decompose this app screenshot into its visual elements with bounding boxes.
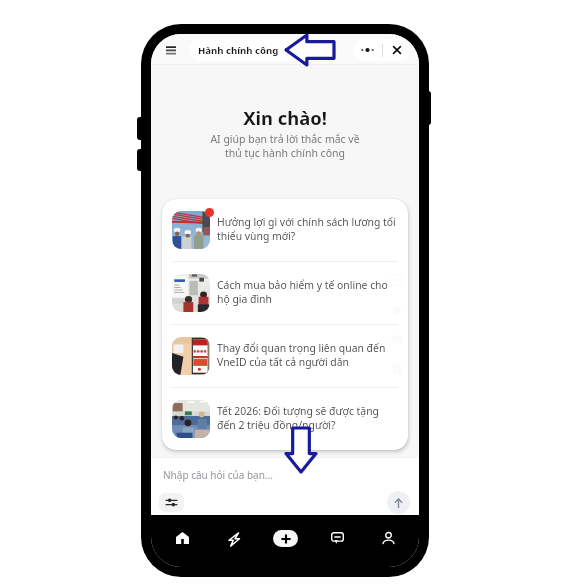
button[interactable]: Thay đổi quan trọng liên quan đến VneID … bbox=[162, 325, 408, 387]
staticText: Thay đổi quan trọng liên quan đến VneID … bbox=[217, 341, 386, 369]
button[interactable]: Profile bbox=[371, 515, 405, 547]
button[interactable]: Messages bbox=[320, 515, 354, 547]
staticText: Nhập câu hỏi của bạn... bbox=[163, 468, 273, 482]
button[interactable]: Menu bbox=[166, 40, 184, 60]
staticText: Tết 2026: Đối tượng sẽ được tặng đến 2 t… bbox=[217, 404, 379, 432]
button[interactable]: Create bbox=[273, 530, 298, 547]
button[interactable]: Discover bbox=[217, 515, 251, 547]
button[interactable]: Cách mua bảo hiểm y tế online cho hộ gia… bbox=[162, 262, 408, 324]
button[interactable]: More options bbox=[353, 39, 382, 61]
button[interactable]: Send bbox=[387, 491, 410, 514]
button[interactable]: Filters bbox=[159, 493, 184, 512]
staticText: AI giúp bạn trả lời thắc mắc về thủ tục … bbox=[151, 132, 419, 160]
button[interactable]: Tết 2026: Đối tượng sẽ được tặng đến 2 t… bbox=[162, 388, 408, 450]
staticText: Cách mua bảo hiểm y tế online cho hộ gia… bbox=[217, 278, 388, 306]
staticText: Hưởng lợi gì với chính sách lương tối th… bbox=[217, 215, 396, 243]
staticText: Hành chính công bbox=[198, 44, 279, 57]
staticText: Xin chào! bbox=[151, 105, 419, 130]
button[interactable]: Close bbox=[383, 39, 410, 61]
button[interactable]: Hành chính công bbox=[189, 39, 300, 61]
button[interactable]: Home bbox=[165, 515, 199, 547]
button[interactable]: Hưởng lợi gì với chính sách lương tối th… bbox=[162, 199, 408, 261]
